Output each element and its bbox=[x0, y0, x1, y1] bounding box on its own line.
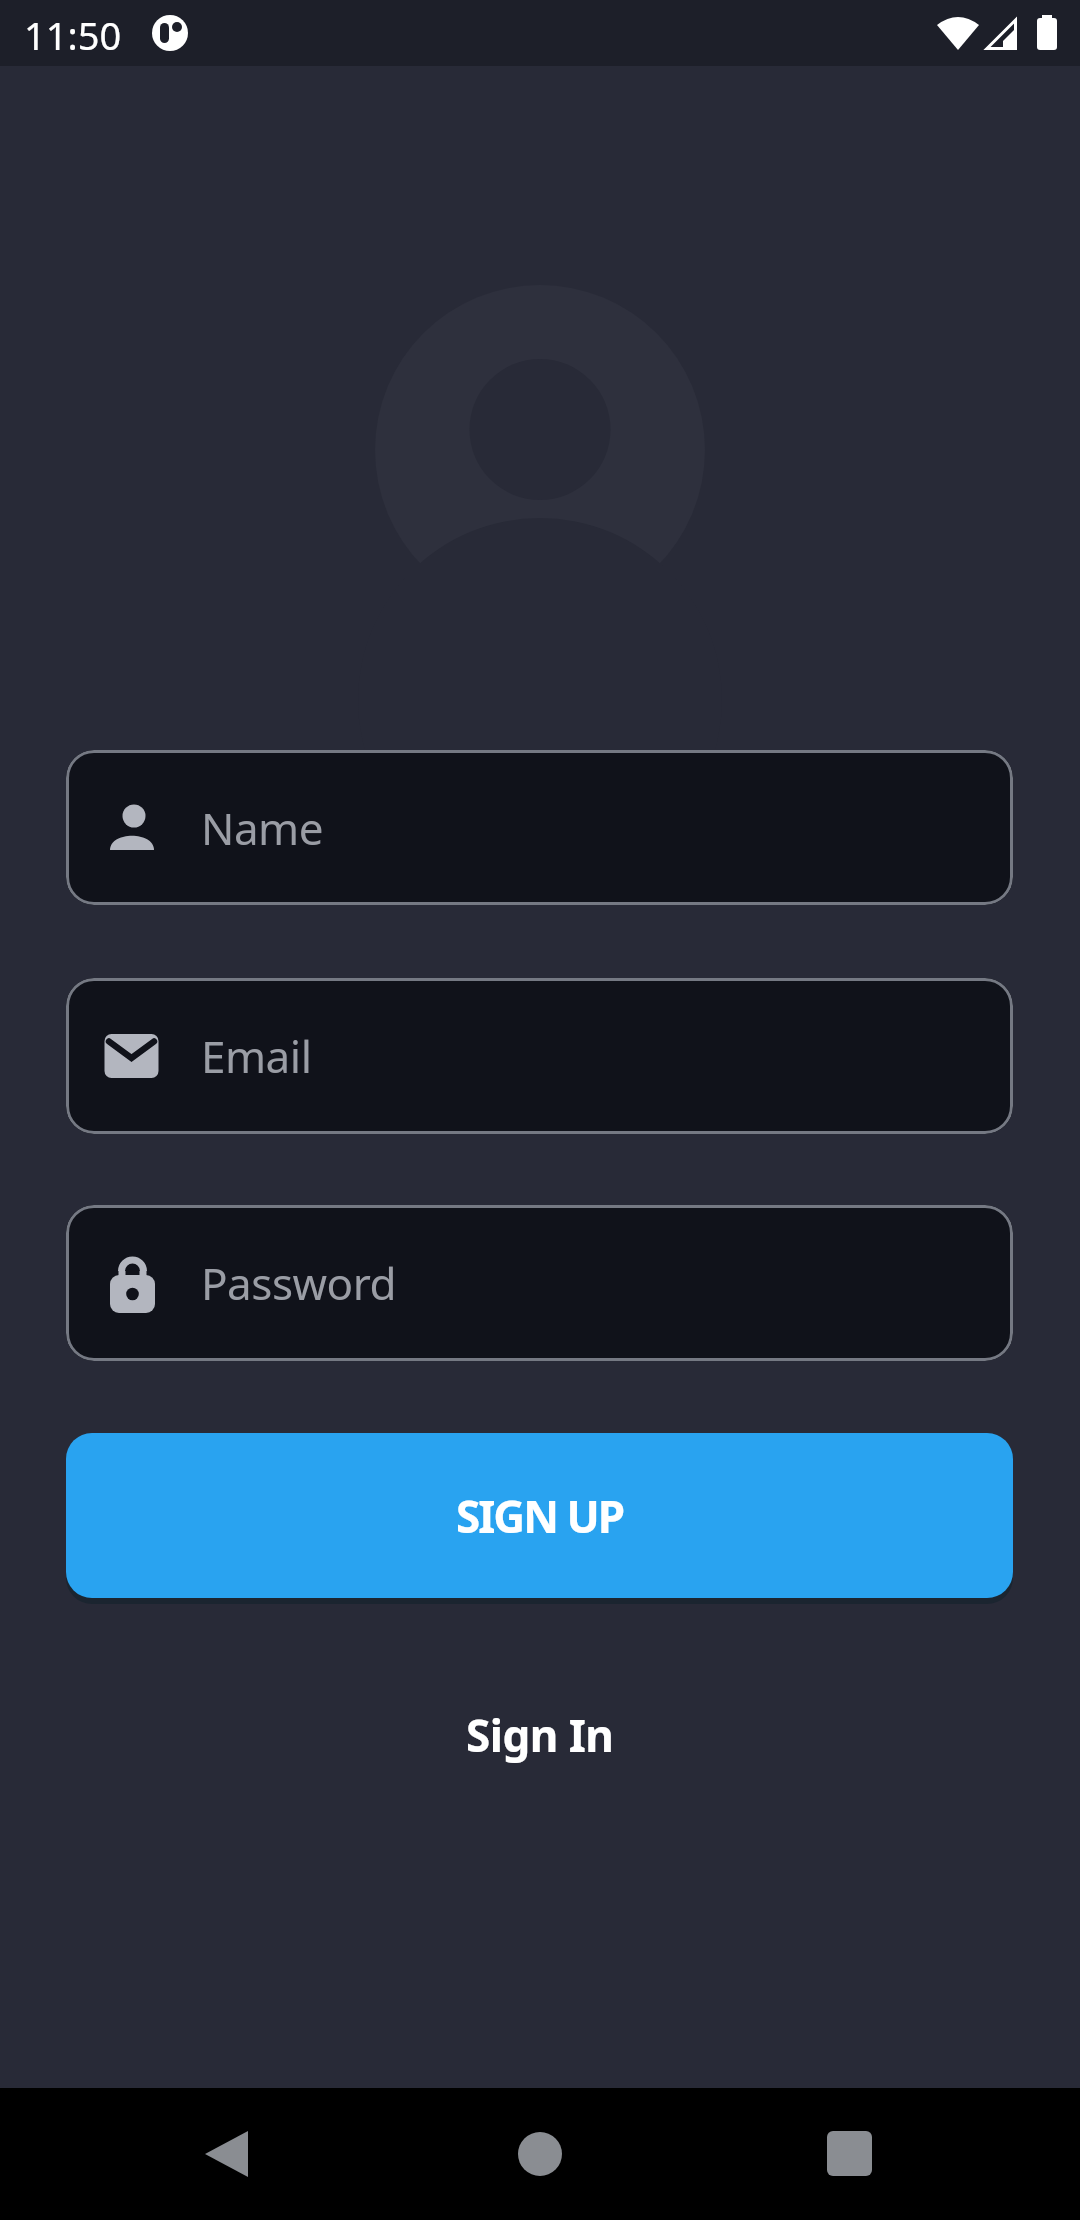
button[interactable]: SIGN UP bbox=[66, 1433, 1013, 1598]
staticText: Password bbox=[201, 1253, 397, 1313]
staticText: Email bbox=[201, 1026, 312, 1086]
staticText: 11:50 bbox=[24, 9, 122, 61]
staticText: Name bbox=[201, 798, 324, 858]
button[interactable]: Sign In bbox=[0, 1700, 1080, 1770]
button[interactable]: Email bbox=[66, 978, 1013, 1134]
staticText: SIGN UP bbox=[456, 1486, 624, 1546]
button[interactable] bbox=[185, 2131, 271, 2217]
button[interactable] bbox=[497, 2131, 583, 2217]
button[interactable]: Password bbox=[66, 1205, 1013, 1361]
staticText: Sign In bbox=[466, 1705, 614, 1765]
button[interactable]: Name bbox=[66, 750, 1013, 905]
button[interactable] bbox=[807, 2131, 893, 2217]
